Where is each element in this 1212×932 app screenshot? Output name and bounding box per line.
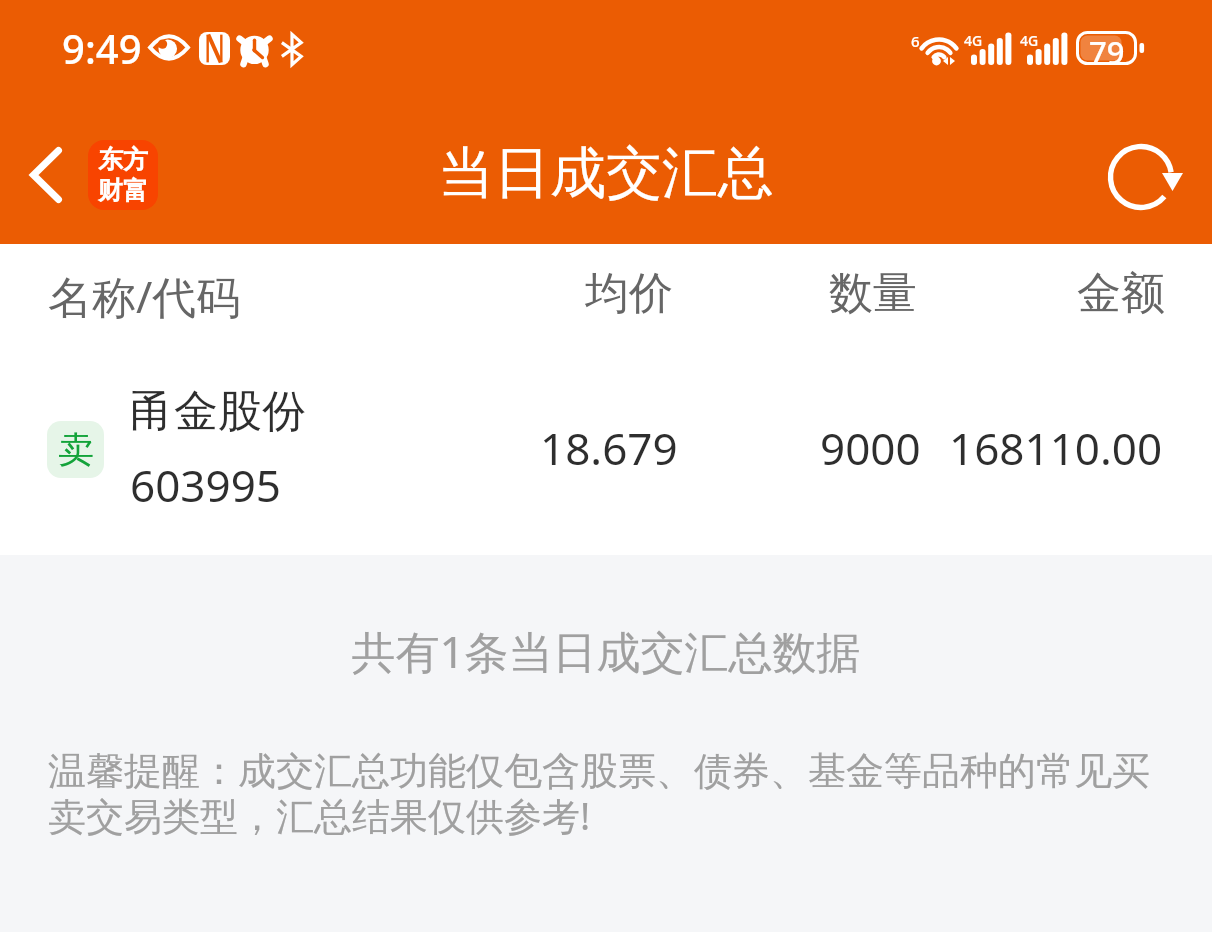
button[interactable]: Refresh: [1096, 132, 1186, 222]
staticText: 卖: [58, 427, 94, 472]
staticText: 东方: [98, 144, 148, 175]
staticText: 168110.00: [949, 418, 1163, 478]
staticText: 均价: [585, 266, 673, 321]
staticText: 当日成交汇总: [438, 138, 774, 209]
staticText: 数量: [829, 266, 917, 321]
staticText: 79: [1089, 31, 1125, 66]
staticText: 9:49: [62, 21, 142, 75]
staticText: 4G: [1020, 31, 1039, 50]
button[interactable]: Back: [0, 133, 88, 221]
staticText: 财富: [98, 175, 148, 206]
staticText: 9000: [820, 418, 921, 478]
staticText: 名称/代码: [48, 266, 241, 326]
button[interactable]: East Money: [88, 140, 158, 210]
staticText: 6: [911, 31, 920, 51]
button[interactable]: 卖: [0, 360, 1212, 555]
staticText: 金额: [1077, 266, 1165, 321]
staticText: 4G: [964, 31, 983, 50]
staticText: 温馨提醒：成交汇总功能仅包含股票、债券、基金等品种的常见买卖交易类型，汇总结果仅…: [48, 747, 1160, 841]
staticText: 603995: [130, 455, 282, 515]
staticText: 共有1条当日成交汇总数据: [0, 621, 1212, 681]
staticText: 甬金股份: [130, 384, 306, 439]
staticText: 18.679: [540, 418, 678, 478]
